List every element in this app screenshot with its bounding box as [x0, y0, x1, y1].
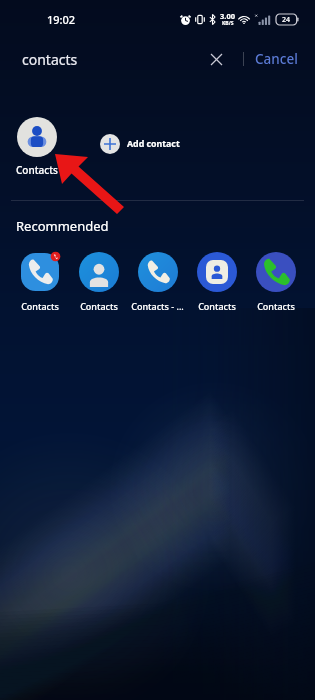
button[interactable]: Contacts [246, 252, 305, 312]
staticText: Recommended [16, 217, 109, 235]
staticText: Contacts - ... [131, 300, 184, 312]
button[interactable]: Cancel [244, 40, 315, 78]
staticText: KB/S [222, 20, 234, 27]
staticText: 19:02 [47, 12, 76, 27]
staticText: Contacts [257, 300, 295, 312]
button[interactable]: Clear search [198, 41, 234, 77]
button[interactable]: Contacts [10, 252, 69, 312]
other: Pointer annotation [0, 0, 315, 700]
staticText: Contacts [80, 300, 118, 312]
button[interactable]: Contacts - ... [128, 252, 187, 312]
staticText: Contacts [16, 163, 58, 177]
button[interactable]: Add contact [100, 134, 180, 154]
staticText: Contacts [21, 300, 59, 312]
staticText: Contacts [198, 300, 236, 312]
button[interactable]: Contacts [187, 252, 246, 312]
button[interactable]: Contacts [69, 252, 128, 312]
staticText: Add contact [127, 138, 180, 150]
button[interactable]: Contacts [16, 117, 58, 177]
staticText: Cancel [255, 50, 298, 68]
staticText: 3.00 [220, 11, 235, 21]
staticText: 24 [282, 15, 291, 25]
staticText: contacts [22, 50, 78, 69]
